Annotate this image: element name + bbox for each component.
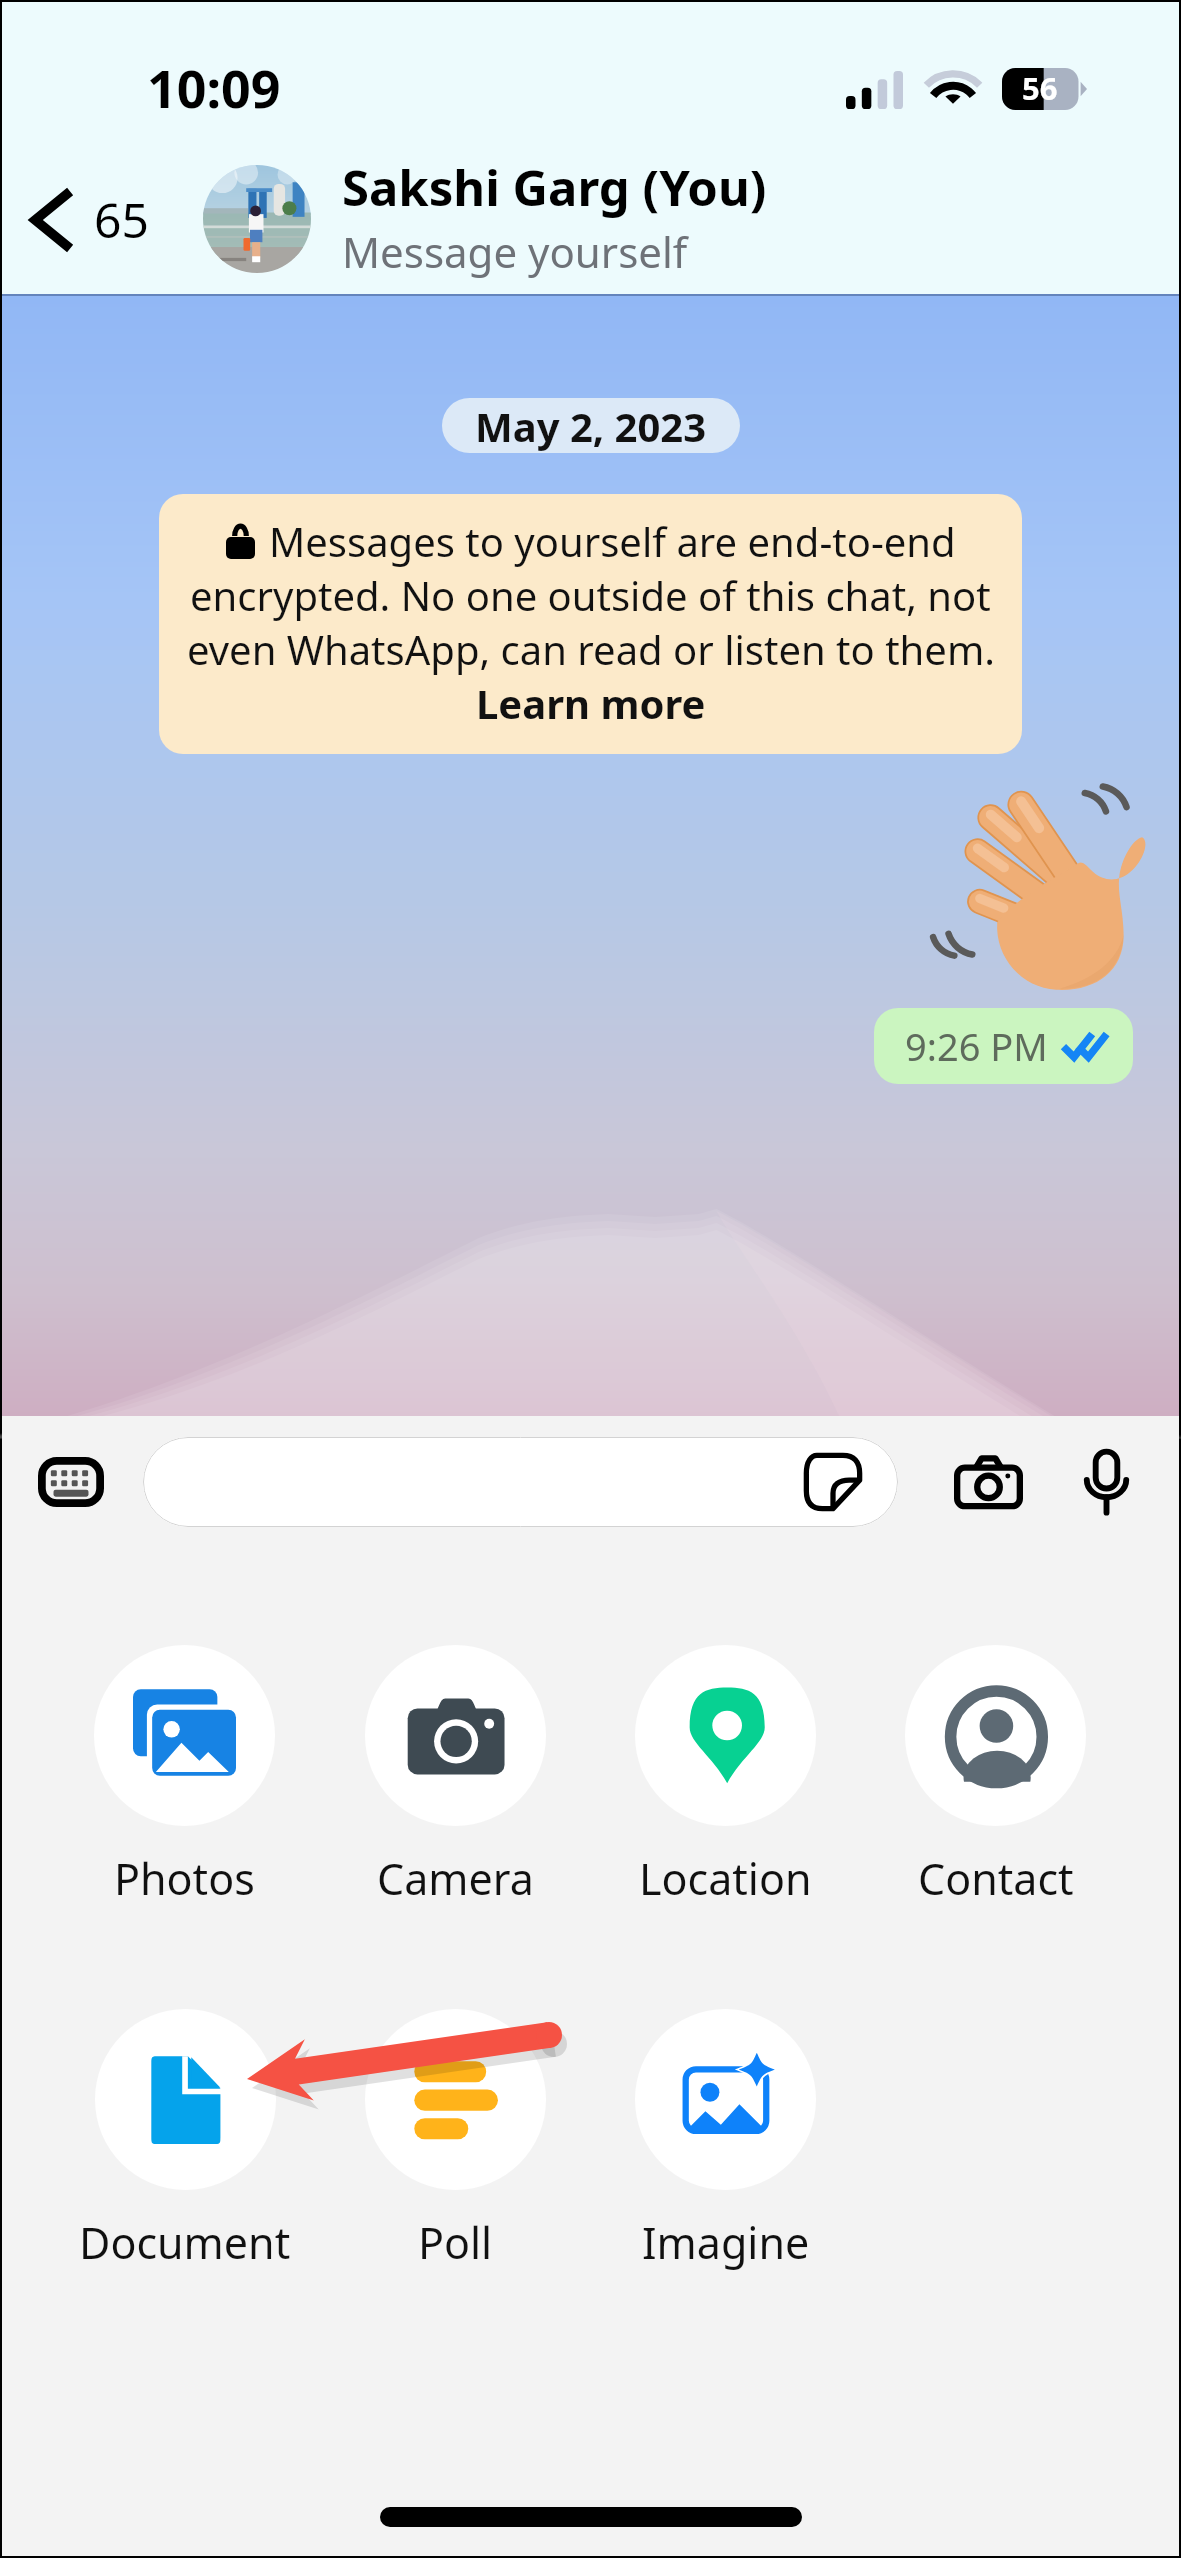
staticText: Learn more — [476, 676, 706, 730]
button[interactable]: Contact — [905, 1645, 1086, 1908]
button[interactable]: Back — [2, 187, 161, 252]
staticText: Messages to yourself are end-to-end — [269, 514, 956, 568]
button[interactable]: Sakshi Garg (You) — [342, 156, 767, 282]
staticText: May 2, 2023 — [475, 399, 707, 453]
button[interactable]: 9:26 PM — [874, 1008, 1133, 1084]
button[interactable]: Messages to yourself are end-to-end — [159, 494, 1022, 754]
other: Back — [28, 189, 76, 251]
staticText: Photos — [114, 1849, 255, 1908]
button[interactable]: Camera — [954, 1455, 1023, 1510]
button[interactable] — [203, 165, 311, 273]
button[interactable] — [143, 1437, 898, 1527]
button[interactable]: Camera — [365, 1645, 546, 1908]
button[interactable]: Voice message — [1083, 1449, 1130, 1516]
button[interactable]: Keyboard — [38, 1457, 104, 1507]
button[interactable]: May 2, 2023 — [442, 398, 740, 453]
staticText: Camera — [377, 1849, 534, 1908]
staticText: Document — [79, 2213, 291, 2272]
staticText: Message yourself — [342, 223, 688, 280]
button[interactable]: Poll — [365, 2009, 546, 2272]
staticText: Poll — [418, 2213, 493, 2272]
staticText: 9:26 PM — [905, 1020, 1048, 1072]
button[interactable]: Location — [635, 1645, 816, 1908]
staticText: Contact — [918, 1849, 1074, 1908]
staticText: even WhatsApp, can read or listen to the… — [187, 622, 995, 676]
staticText: 65 — [94, 187, 149, 252]
staticText: 10:09 — [147, 52, 281, 123]
staticText: encrypted. No one outside of this chat, … — [190, 568, 991, 622]
staticText: Imagine — [642, 2213, 810, 2272]
staticText: Location — [639, 1849, 812, 1908]
button[interactable]: Imagine — [635, 2009, 816, 2272]
button[interactable]: Document — [79, 2009, 291, 2272]
staticText: Sakshi Garg (You) — [342, 154, 767, 221]
button[interactable]: Photos — [94, 1645, 275, 1908]
staticText: 56 — [1022, 67, 1058, 109]
